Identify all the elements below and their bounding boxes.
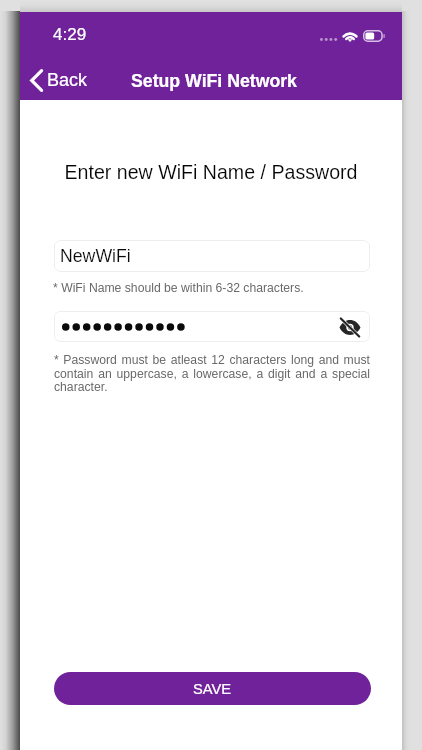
- button[interactable]: Hide password: [336, 313, 364, 341]
- staticText: Setup WiFi Network: [23, 71, 405, 91]
- staticText: SAVE: [193, 681, 232, 697]
- button[interactable]: SAVE: [54, 672, 371, 705]
- staticText: 4:29: [53, 25, 87, 44]
- button[interactable]: NewWiFi: [54, 240, 370, 272]
- staticText: Back: [47, 70, 88, 90]
- staticText: NewWiFi: [60, 246, 131, 266]
- staticText: Enter new WiFi Name / Password: [20, 161, 402, 183]
- staticText: * Password must be atleast 12 characters…: [54, 353, 370, 393]
- staticText: * WiFi Name should be within 6-32 charac…: [53, 281, 304, 295]
- button[interactable]: Back: [20, 58, 98, 102]
